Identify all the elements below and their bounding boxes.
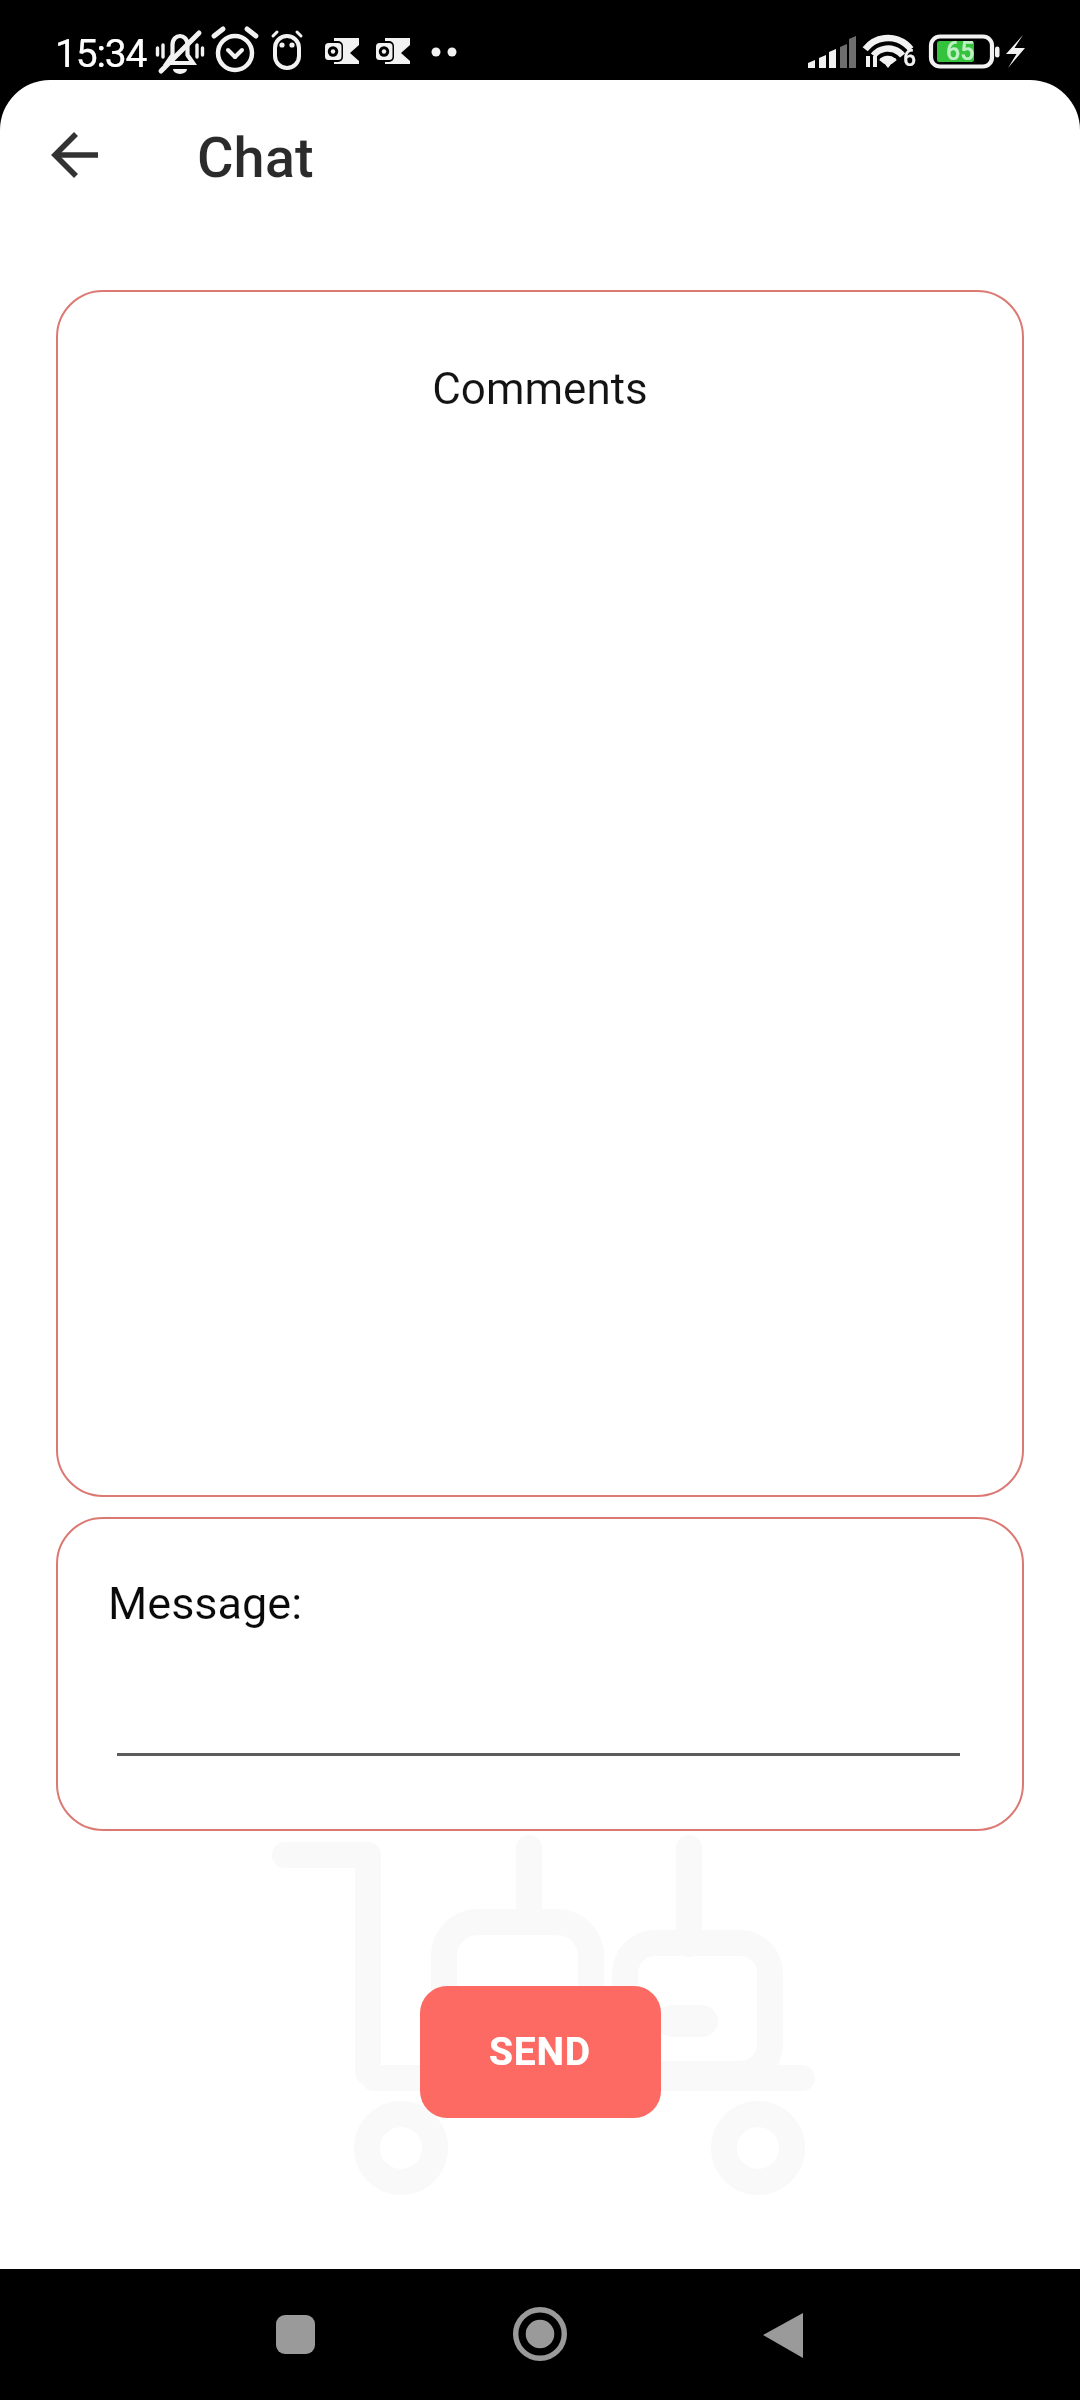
button[interactable]: SEND (420, 1986, 661, 2118)
button[interactable]: Back (742, 2294, 826, 2378)
staticText: Message: (108, 1577, 303, 1630)
button[interactable]: Comments (56, 290, 1024, 1497)
button[interactable]: Recents (254, 2294, 338, 2378)
staticText: 6 (903, 45, 917, 72)
button[interactable]: Home (498, 2294, 582, 2378)
button[interactable]: Back (33, 113, 117, 197)
button[interactable]: Message input field (117, 1667, 960, 1756)
staticText: 15:34 (55, 31, 147, 77)
staticText: 65 (946, 37, 975, 66)
staticText: Chat (197, 125, 314, 191)
staticText: Comments (56, 363, 1024, 415)
staticText: SEND (489, 2029, 592, 2075)
button[interactable]: Message: (56, 1517, 1024, 1831)
